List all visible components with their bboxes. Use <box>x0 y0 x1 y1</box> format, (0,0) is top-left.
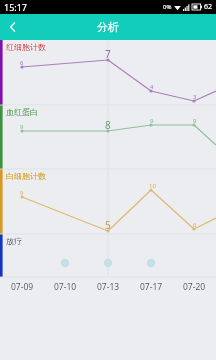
staticText: 血红蛋白 <box>6 107 38 117</box>
staticText: 3 <box>193 93 197 101</box>
staticText: 6 <box>20 59 24 67</box>
staticText: 10 <box>149 182 156 190</box>
staticText: 07-09 <box>11 281 34 293</box>
staticText: 5 <box>105 218 111 232</box>
staticText: 07-20 <box>183 281 206 293</box>
staticText: 62 <box>204 2 213 12</box>
staticText: 8 <box>105 118 111 132</box>
staticText: 白细胞计数 <box>6 171 46 181</box>
staticText: 4 <box>150 83 154 91</box>
staticText: 15:17 <box>4 1 28 13</box>
staticText: 9 <box>20 189 24 197</box>
staticText: 放疗 <box>6 236 22 246</box>
staticText: 分析 <box>97 20 119 34</box>
staticText: 9 <box>20 123 24 131</box>
staticText: 0% <box>163 3 172 11</box>
button[interactable]: Back <box>0 14 26 40</box>
staticText: 07-10 <box>54 281 77 293</box>
staticText: 9 <box>193 117 197 125</box>
staticText: 6 <box>193 221 197 229</box>
staticText: 7 <box>105 47 111 61</box>
staticText: 红细胞计数 <box>6 42 46 52</box>
staticText: 07-17 <box>140 281 163 293</box>
staticText: 07-13 <box>97 281 120 293</box>
staticText: 9 <box>150 117 154 125</box>
